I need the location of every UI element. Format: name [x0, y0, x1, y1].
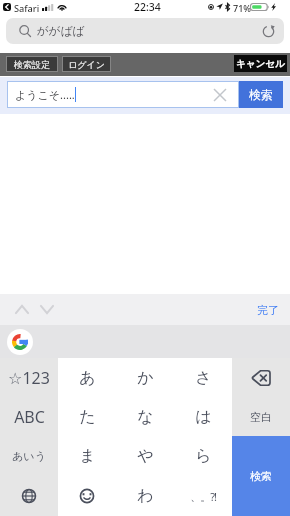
staticText: ようこそ.....: [15, 87, 75, 102]
button[interactable]: や: [116, 436, 174, 476]
button[interactable]: Clear: [212, 87, 228, 103]
staticText: ABC: [14, 406, 45, 428]
button[interactable]: ☆123: [0, 358, 58, 397]
button[interactable]: 検索: [239, 81, 283, 108]
staticText: さ: [195, 368, 212, 388]
button[interactable]: Previous field: [10, 299, 33, 320]
button[interactable]: Change keyboard: [0, 476, 58, 516]
staticText: か: [137, 368, 154, 388]
staticText: ☆123: [8, 367, 50, 389]
button[interactable]: ががばば: [6, 18, 284, 44]
staticText: た: [79, 407, 96, 427]
button[interactable]: 完了: [257, 303, 279, 317]
button[interactable]: ら: [174, 436, 232, 476]
button[interactable]: た: [58, 397, 116, 436]
button[interactable]: か: [116, 358, 174, 397]
staticText: 検索: [249, 87, 273, 102]
staticText: 、。?!: [190, 489, 216, 504]
staticText: あいう: [12, 449, 46, 463]
staticText: キャンセル: [236, 58, 285, 70]
staticText: 検索: [250, 469, 272, 483]
button[interactable]: わ: [116, 476, 174, 516]
button[interactable]: ABC: [0, 397, 58, 436]
button[interactable]: Backspace: [232, 358, 290, 397]
button[interactable]: Next field: [35, 299, 58, 320]
button[interactable]: 検索設定: [6, 56, 58, 72]
button[interactable]: ようこそ.....: [7, 81, 239, 108]
staticText: 71%: [233, 2, 251, 14]
staticText: 完了: [257, 303, 279, 317]
button[interactable]: ログイン: [62, 56, 111, 72]
staticText: は: [195, 407, 212, 427]
button[interactable]: Emoji: [58, 476, 116, 516]
button[interactable]: さ: [174, 358, 232, 397]
button[interactable]: Google: [7, 329, 33, 355]
button[interactable]: Back to Safari: [3, 3, 11, 11]
button[interactable]: は: [174, 397, 232, 436]
button[interactable]: Reload: [261, 24, 276, 39]
button[interactable]: 、。?!: [174, 476, 232, 516]
button[interactable]: ま: [58, 436, 116, 476]
button[interactable]: 空白: [232, 397, 290, 436]
button[interactable]: な: [116, 397, 174, 436]
staticText: 検索設定: [14, 59, 50, 70]
staticText: な: [137, 407, 154, 427]
staticText: 22:34: [134, 0, 161, 14]
staticText: ががばば: [37, 24, 85, 38]
staticText: あ: [79, 368, 96, 388]
staticText: ま: [79, 446, 96, 466]
button[interactable]: あいう: [0, 436, 58, 476]
button[interactable]: キャンセル: [234, 55, 287, 72]
button[interactable]: 検索: [232, 436, 290, 516]
staticText: ログイン: [68, 59, 105, 70]
staticText: わ: [137, 486, 154, 506]
staticText: 空白: [250, 410, 272, 424]
staticText: ら: [195, 446, 212, 466]
staticText: や: [137, 446, 154, 466]
staticText: Safari: [14, 2, 40, 15]
button[interactable]: あ: [58, 358, 116, 397]
